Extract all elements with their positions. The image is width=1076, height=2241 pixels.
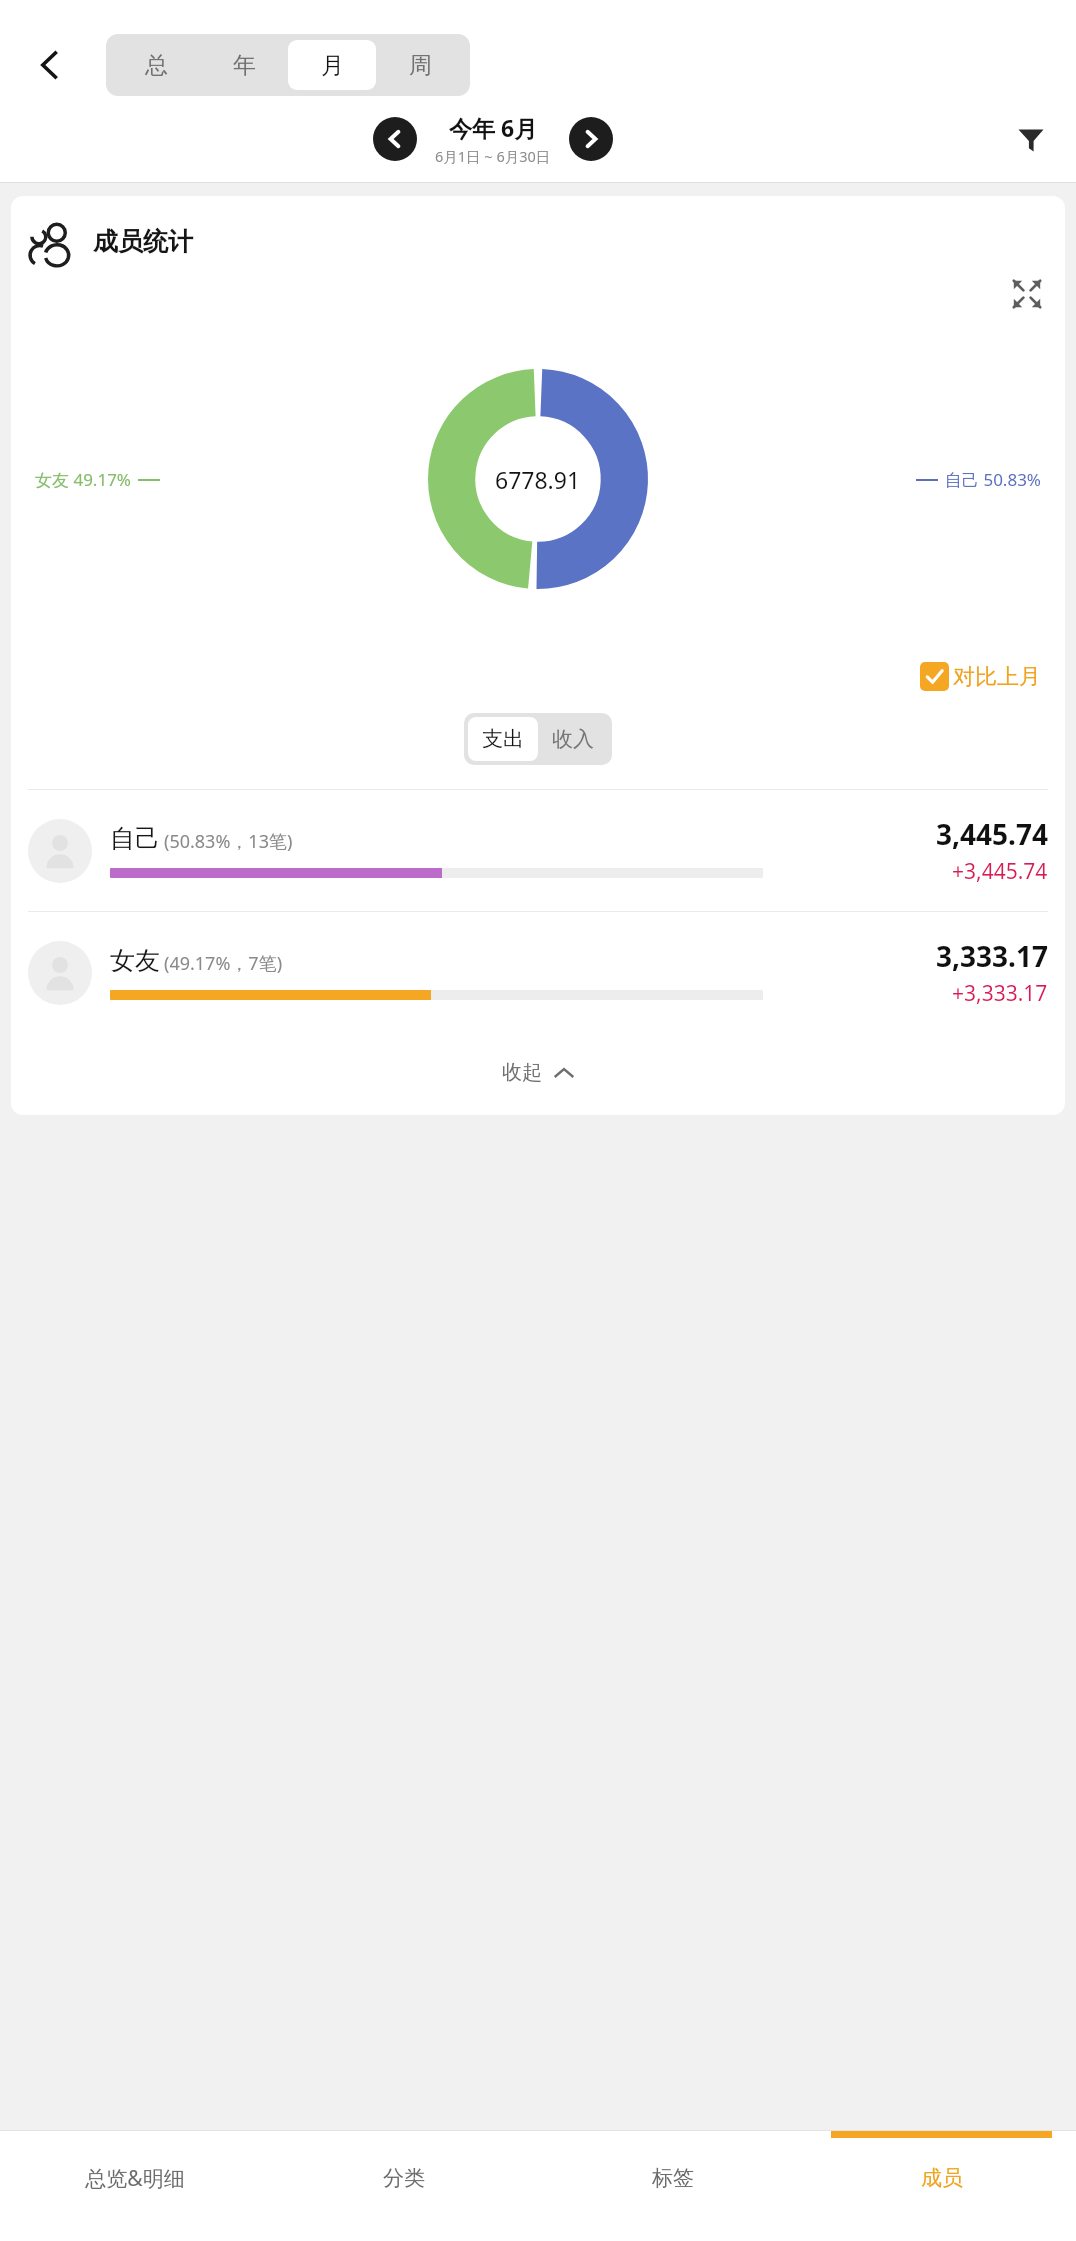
button[interactable]: Filter [986,100,1076,178]
staticText: 年 [233,51,256,80]
staticText: 对比上月 [953,663,1041,691]
button[interactable]: 标签 [538,2131,807,2241]
staticText: 自己 50.83% [945,468,1041,491]
staticText: (49.17%，7笔) [164,951,283,976]
staticText: 今年 6月 [449,112,538,143]
staticText: 3,333.17 [936,937,1048,975]
button[interactable]: 支出 [468,717,538,761]
staticText: 分类 [383,2165,425,2191]
button[interactable]: 自己 [11,790,1065,911]
button[interactable]: Next period [569,117,613,161]
staticText: 收入 [552,726,594,752]
staticText: 收起 [502,1060,542,1085]
button[interactable]: 总 [112,40,200,90]
button[interactable]: 对比上月 [920,662,1041,691]
staticText: 6778.91 [495,464,581,495]
staticText: 成员 [921,2165,963,2191]
button[interactable]: 月 [288,40,376,90]
button[interactable]: 女友 [11,912,1065,1033]
staticText: 标签 [652,2165,694,2191]
button[interactable]: 分类 [269,2131,538,2241]
button[interactable]: 成员 [807,2131,1076,2241]
staticText: 女友 49.17% [35,468,131,491]
staticText: 自己 [110,823,160,854]
staticText: 月 [321,51,344,80]
staticText: 周 [409,51,432,80]
staticText: 女友 [110,945,160,976]
button[interactable]: Previous period [373,117,417,161]
button[interactable]: 收入 [538,717,608,761]
button[interactable]: 收起 [11,1033,1065,1111]
staticText: 支出 [482,726,524,752]
button[interactable]: Fullscreen [1007,274,1047,314]
button[interactable]: 年 [200,40,288,90]
staticText: +3,333.17 [952,979,1048,1008]
staticText: 总览&明细 [85,2164,185,2193]
staticText: 总 [145,51,168,80]
staticText: 成员统计 [93,226,193,257]
button[interactable]: 总览&明细 [0,2131,269,2241]
staticText: 3,445.74 [936,815,1048,853]
staticText: (50.83%，13笔) [164,829,293,854]
staticText: 6月1日 ~ 6月30日 [435,146,551,166]
staticText: +3,445.74 [952,857,1048,886]
button[interactable]: Back [0,30,100,100]
button[interactable]: 周 [376,40,464,90]
